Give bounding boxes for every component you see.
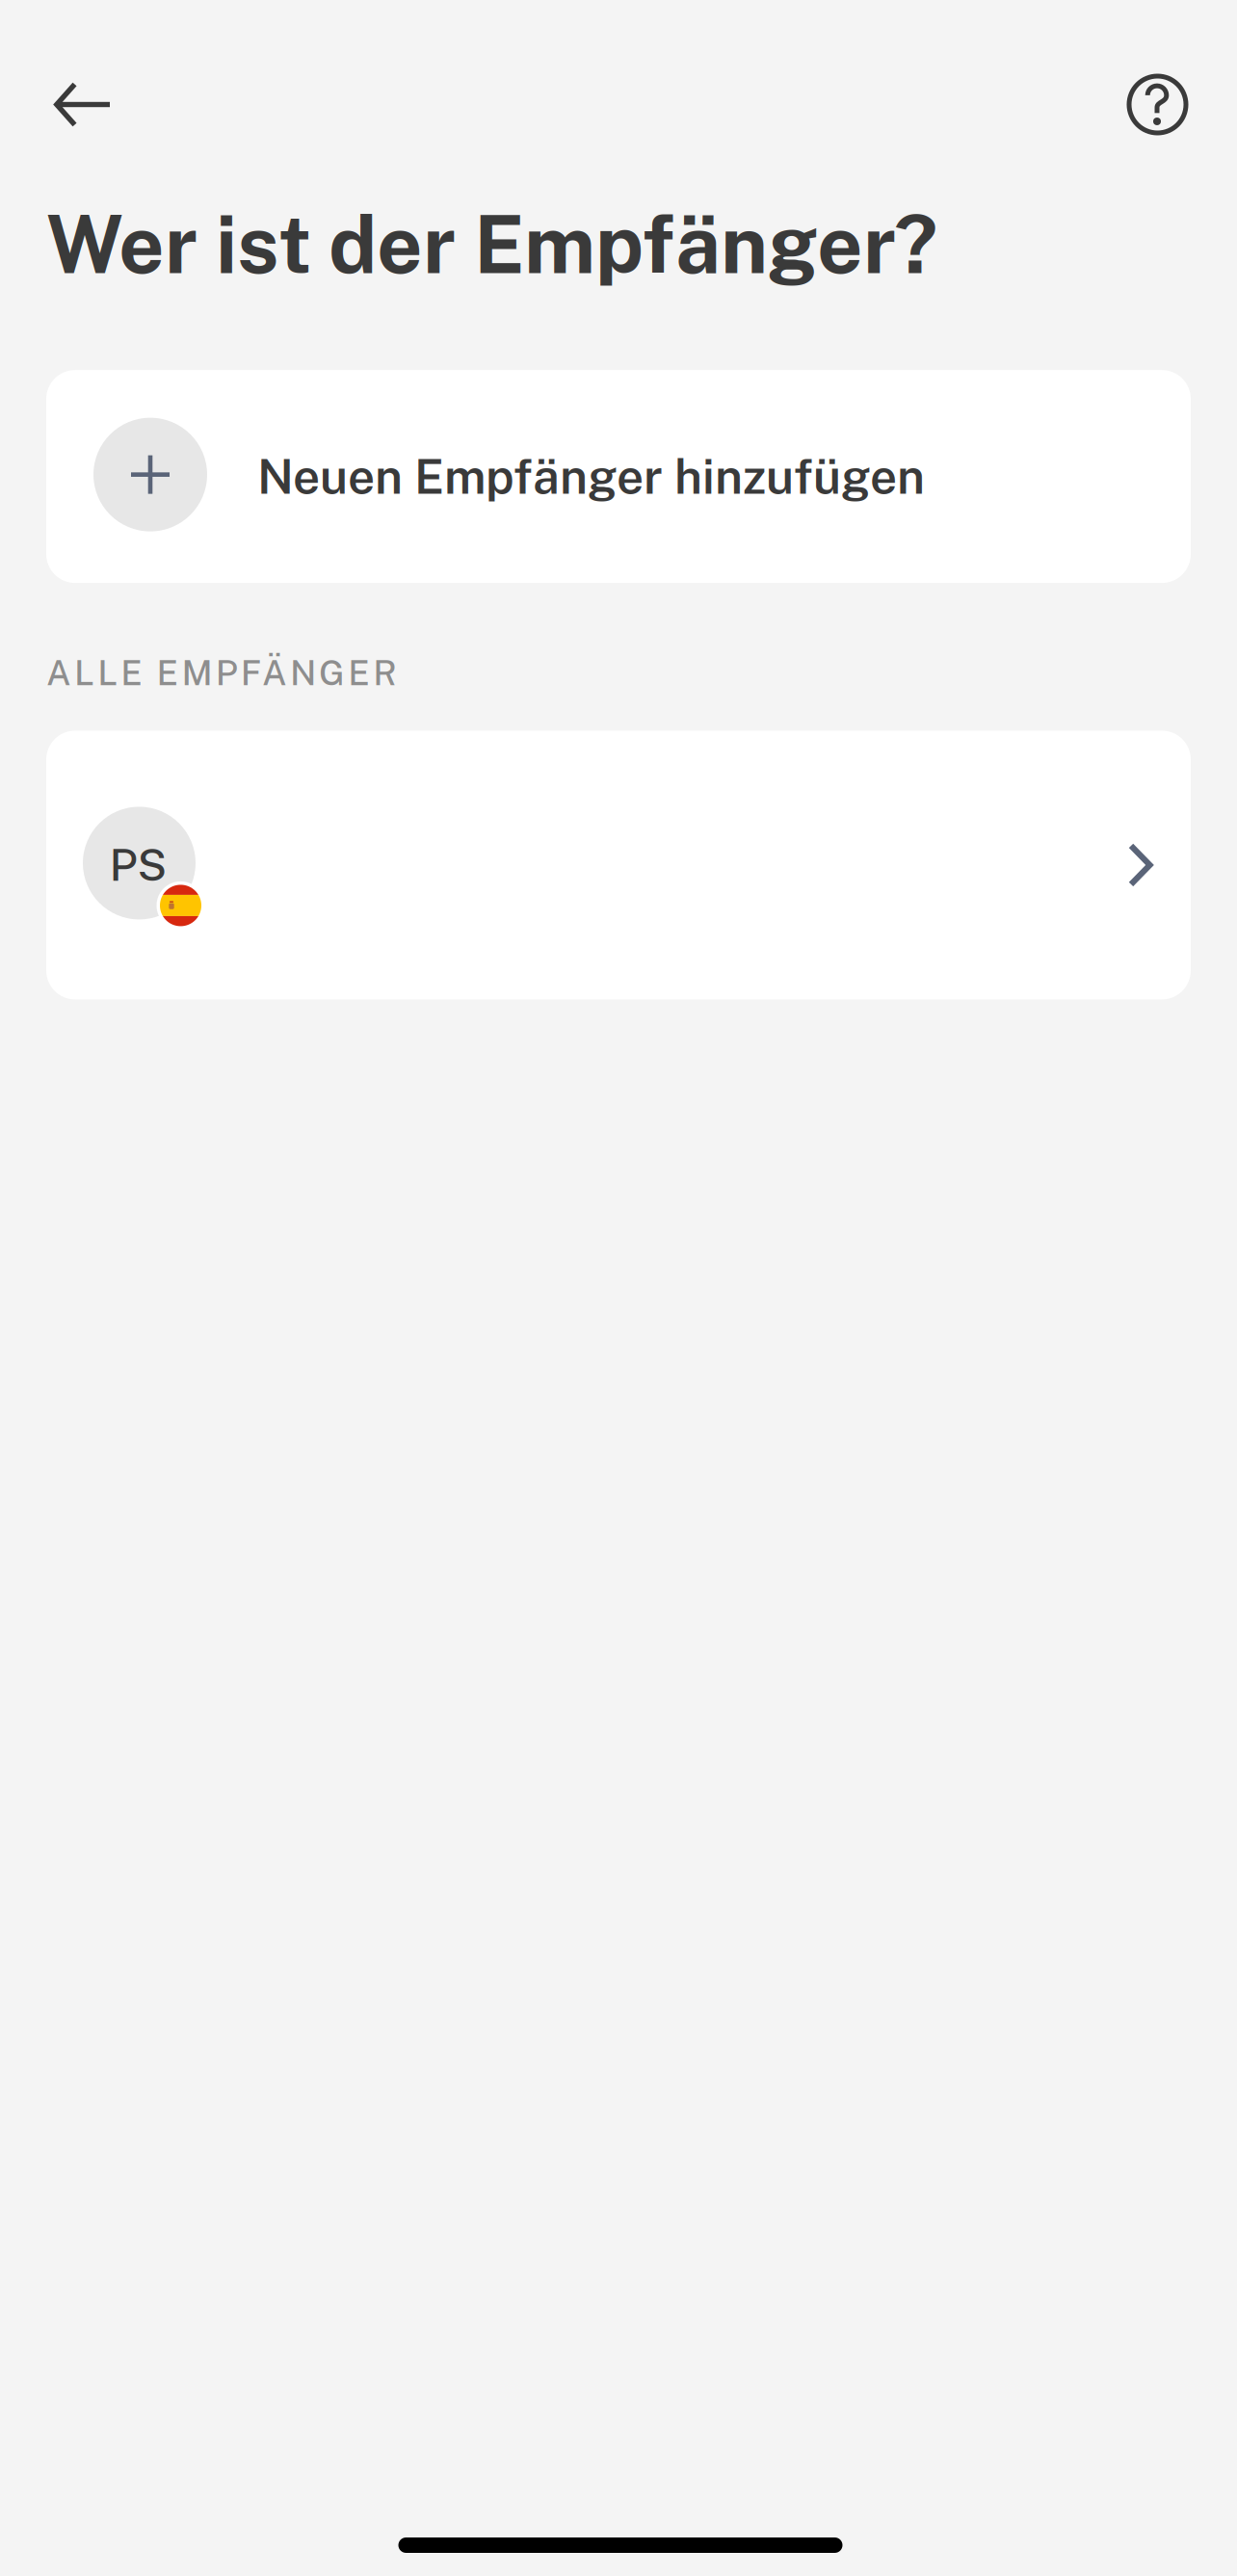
staticText: Wer ist der Empfänger? <box>46 197 937 291</box>
staticText: ALLE EMPFÄNGER <box>46 652 397 693</box>
staticText: Neuen Empfänger hinzufügen <box>257 449 925 504</box>
button[interactable]: Neuen Empfänger hinzufügen <box>46 370 1191 583</box>
button[interactable]: Back <box>26 48 139 161</box>
button[interactable]: Help <box>1101 48 1214 161</box>
button[interactable]: PS <box>46 731 1191 999</box>
staticText: PS <box>109 839 167 891</box>
